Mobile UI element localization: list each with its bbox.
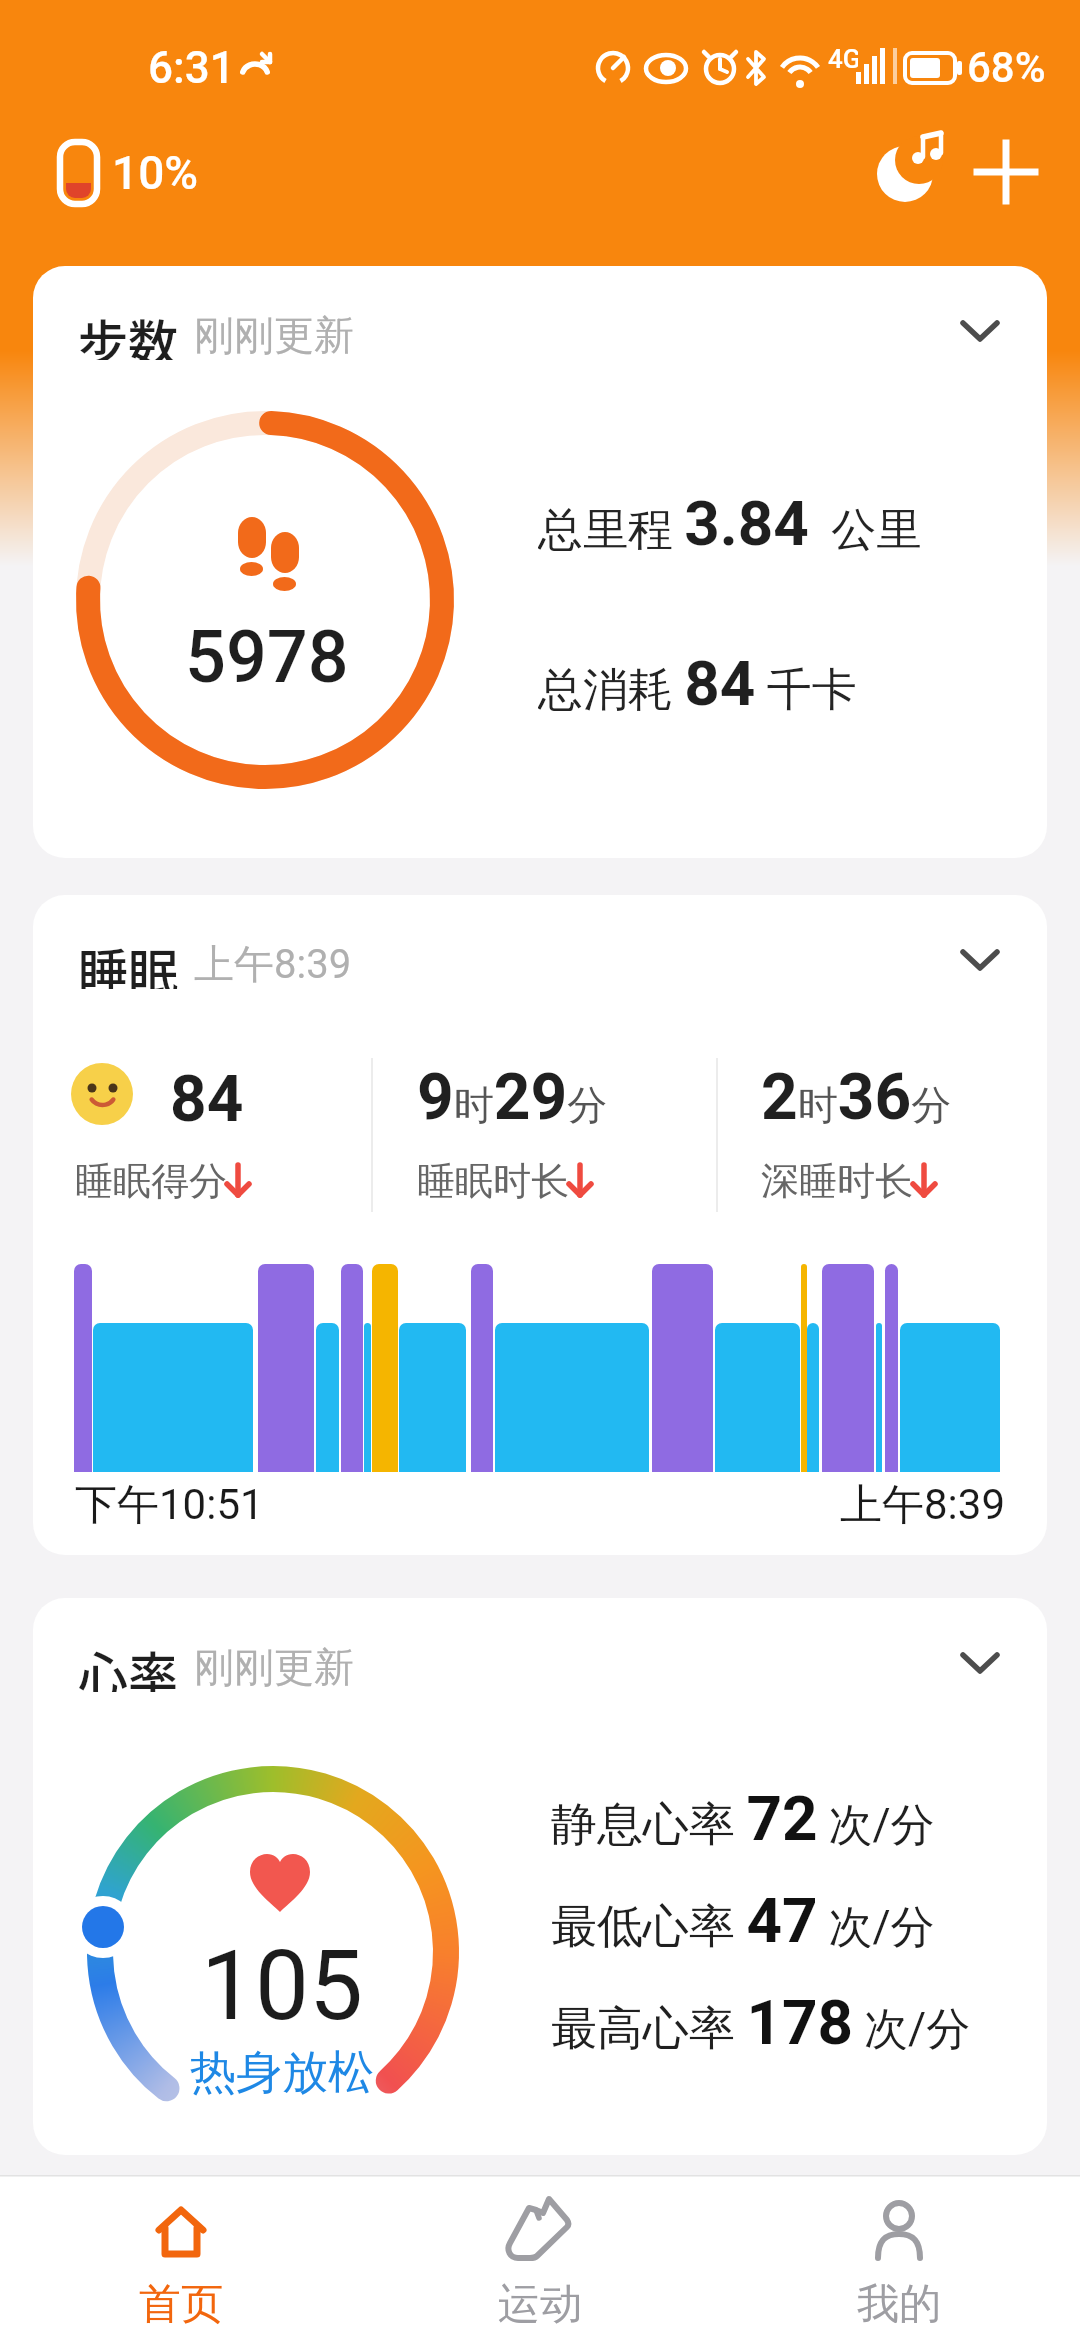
button[interactable] [945,1638,1015,1688]
staticText: 睡眠 [78,933,178,989]
staticText: 最低心率 47 次/分 [551,1884,935,1948]
staticText: 最高心率 178 次/分 [551,1986,971,2050]
staticText: 刚刚更新 [194,1642,354,1692]
staticText: 上午8:39 [194,939,352,989]
button[interactable] [970,136,1042,208]
staticText: 睡眠得分 [75,1157,227,1205]
staticText: 首页 [139,2278,223,2330]
staticText: 总里程 3.84 公里 [538,487,922,557]
staticText: 睡眠时长 [417,1157,569,1205]
staticText: 68% [967,43,1046,92]
button[interactable] [33,1598,1047,2155]
staticText: 9时29分 [417,1060,608,1130]
button[interactable] [33,895,1047,1555]
staticText: 84 [170,1062,244,1128]
staticText: 2时36分 [761,1060,952,1130]
staticText: 热身放松 [190,2044,374,2100]
staticText: 105 [201,1930,363,2030]
button[interactable] [945,306,1015,356]
staticText: 刚刚更新 [194,310,354,360]
staticText: 上午8:39 [840,1479,1005,1532]
staticText: 5978 [185,615,349,689]
staticText: 4G [828,44,858,70]
button[interactable] [819,2180,979,2336]
button[interactable] [33,266,1047,858]
button[interactable] [945,935,1015,985]
staticText: 运动 [498,2278,582,2330]
staticText: 我的 [857,2278,941,2330]
staticText: 深睡时长 [761,1157,913,1205]
staticText: 静息心率 72 次/分 [551,1782,935,1846]
staticText: 下午10:51 [75,1479,264,1532]
button[interactable] [101,2180,261,2336]
staticText: 10% [112,146,199,198]
staticText: 心率 [78,1636,178,1692]
staticText: 6:31 [148,42,235,92]
button[interactable] [862,128,952,218]
staticText: 总消耗 84 千卡 [538,647,857,717]
button[interactable] [460,2180,620,2336]
staticText: 步数 [78,304,178,360]
